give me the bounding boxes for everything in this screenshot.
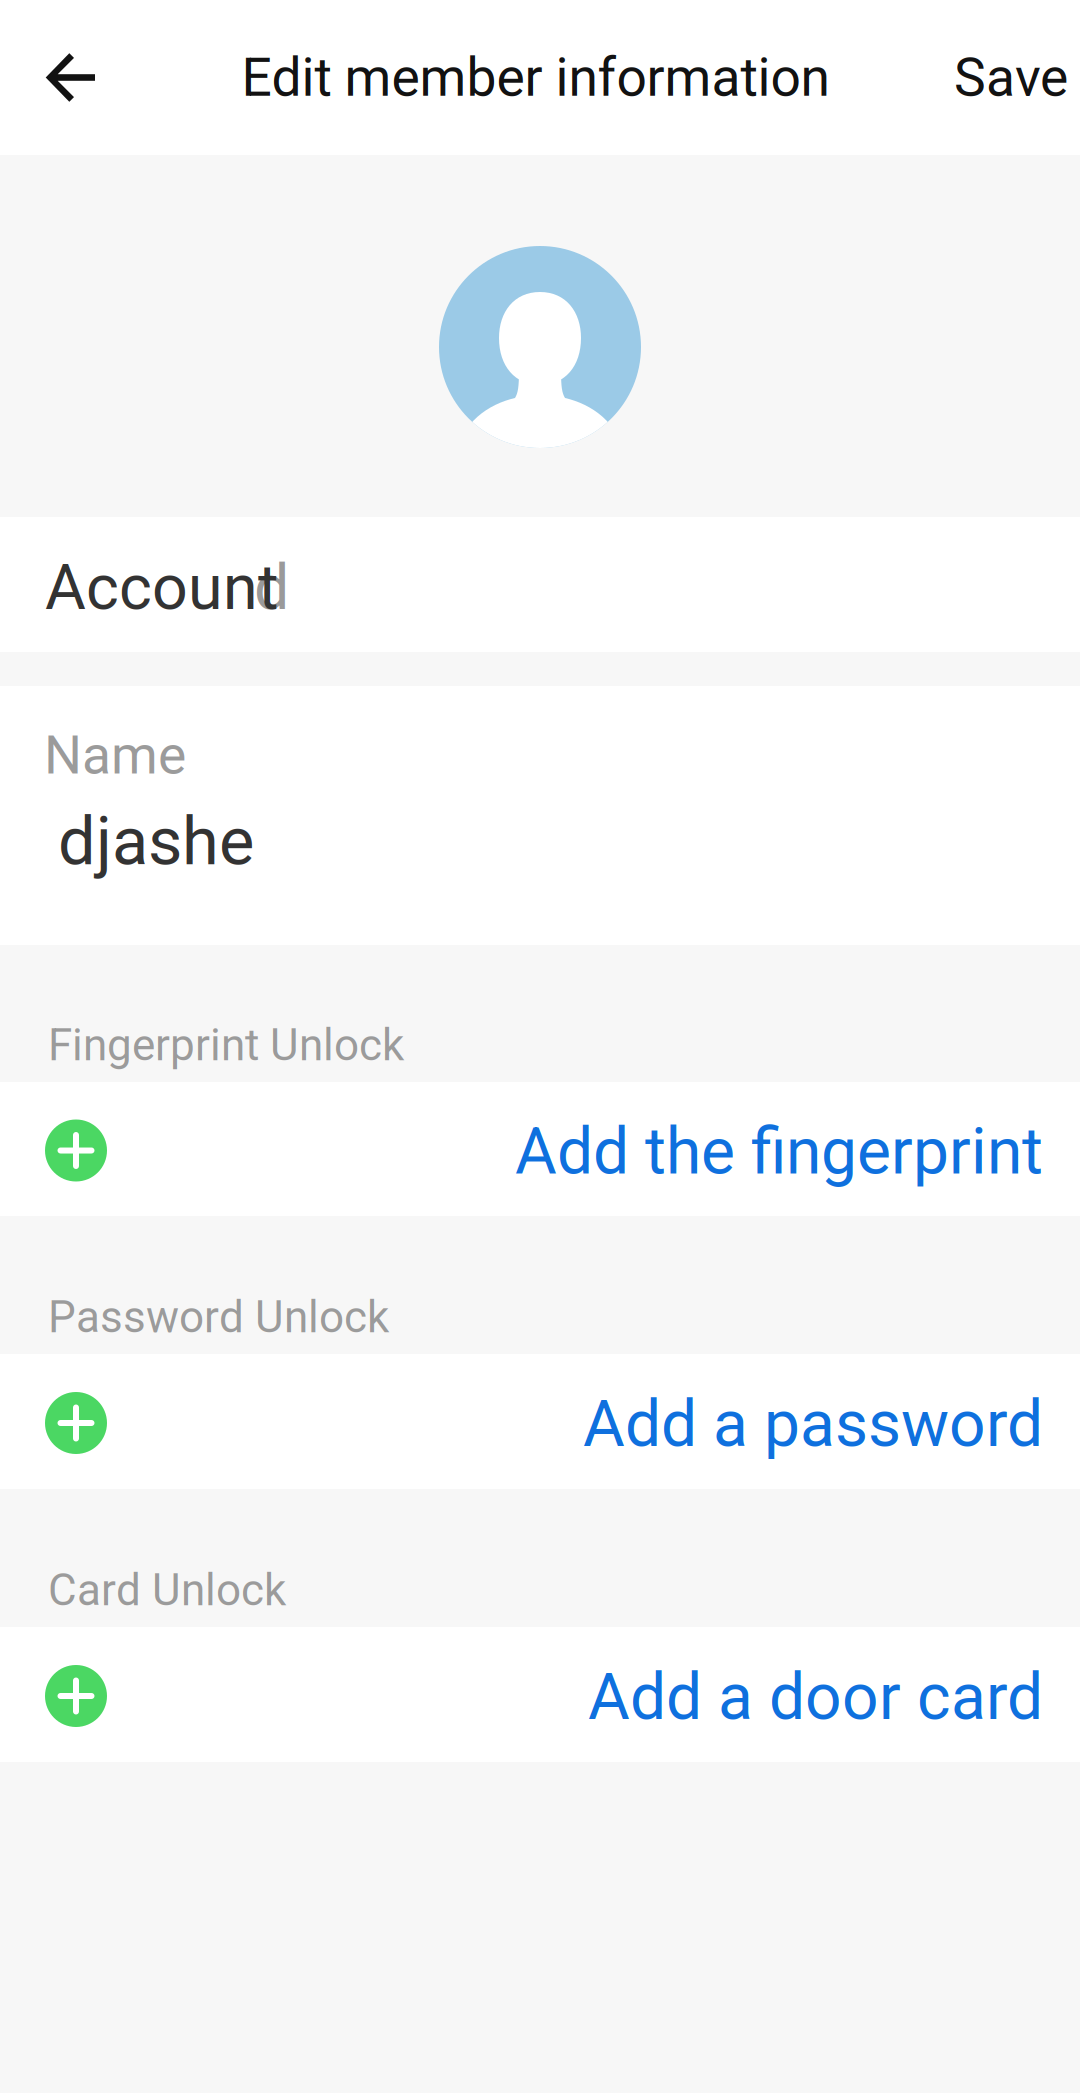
button[interactable]: Name xyxy=(0,686,1080,945)
button[interactable]: Save xyxy=(954,0,1080,155)
staticText: Password Unlock xyxy=(48,1291,389,1343)
staticText: Fingerprint Unlock xyxy=(48,1019,404,1071)
button[interactable]: Add a password xyxy=(0,1354,1080,1489)
staticText: Add a password xyxy=(583,1386,1043,1461)
staticText: d xyxy=(254,551,289,624)
button[interactable]: Add a door card xyxy=(0,1627,1080,1762)
staticText: djashe xyxy=(58,802,254,881)
staticText: Save xyxy=(954,46,1068,109)
staticText: Add a door card xyxy=(588,1659,1043,1734)
button[interactable]: d xyxy=(0,517,1080,652)
staticText: Account xyxy=(45,551,279,624)
staticText: Add the fingerprint xyxy=(515,1114,1043,1189)
button[interactable]: Add the fingerprint xyxy=(0,1082,1080,1216)
staticText: Edit member information xyxy=(241,46,829,109)
staticText: Card Unlock xyxy=(48,1564,286,1616)
button[interactable]: Back xyxy=(0,0,142,155)
staticText: Name xyxy=(44,724,186,786)
